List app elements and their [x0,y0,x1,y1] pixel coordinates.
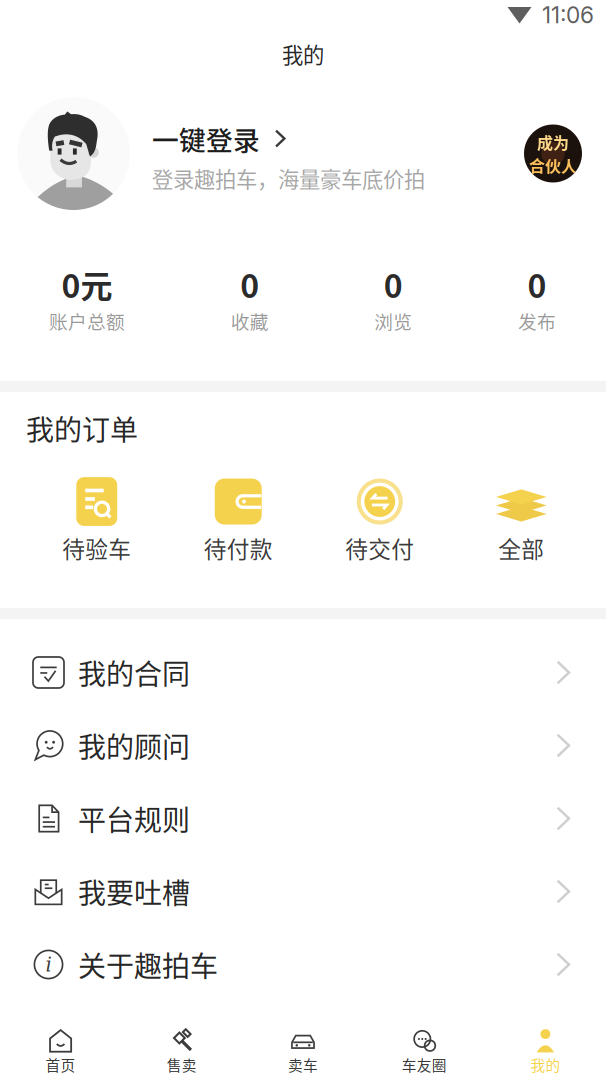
button[interactable]: 卖车 [242,1007,364,1075]
staticText: 0元 [61,261,112,307]
button[interactable]: 我的 [485,1007,606,1075]
staticText: 关于趣拍车 [78,944,218,985]
staticText: 账户总额 [49,307,125,334]
staticText: 11:06 [542,1,594,29]
staticText: 0 [384,261,403,307]
staticText: 发布 [518,307,556,334]
button[interactable]: 待验车 [26,478,167,564]
button[interactable]: 0 [231,261,269,334]
staticText: 售卖 [167,1054,197,1075]
staticText: 我的 [530,1054,560,1075]
staticText: 我要吐槽 [78,871,190,912]
button[interactable]: i [0,928,606,1001]
staticText: 我的顾问 [78,725,190,766]
staticText: 登录趣拍车，海量豪车底价拍 [152,163,425,194]
staticText: 我的订单 [26,408,138,448]
button[interactable]: 0元 [49,261,125,334]
button[interactable]: 车友圈 [364,1007,485,1075]
button[interactable]: 我的合同 [0,636,606,709]
button[interactable]: 我的顾问 [0,709,606,782]
staticText: 卖车 [288,1054,318,1075]
button[interactable]: 待交付 [309,478,450,564]
staticText: 平台规则 [78,798,190,839]
staticText: 收藏 [231,307,269,334]
staticText: 待交付 [345,531,414,564]
staticText: 0 [240,261,259,307]
button[interactable]: 售卖 [121,1007,242,1075]
button[interactable]: 全部 [450,478,592,564]
staticText: 待验车 [62,531,131,564]
button[interactable]: 待付款 [167,478,309,564]
button[interactable]: 平台规则 [0,782,606,855]
staticText: 我的 [282,39,324,69]
staticText: 全部 [498,531,544,564]
staticText: i [45,953,51,976]
button[interactable]: 首页 [0,1007,121,1075]
button[interactable]: 0 [374,261,412,334]
staticText: 合伙人 [529,153,577,177]
staticText: 首页 [46,1054,76,1075]
button[interactable]: 0 [518,261,556,334]
staticText: 车友圈 [402,1054,447,1075]
staticText: 我的合同 [78,652,190,693]
staticText: 一键登录 [152,119,260,158]
button[interactable]: 成为合伙人 [524,124,582,182]
button[interactable]: 我要吐槽 [0,855,606,928]
staticText: 待付款 [204,531,273,564]
staticText: 0 [527,261,546,307]
staticText: 浏览 [374,307,412,334]
staticText: 成为 [537,130,569,153]
